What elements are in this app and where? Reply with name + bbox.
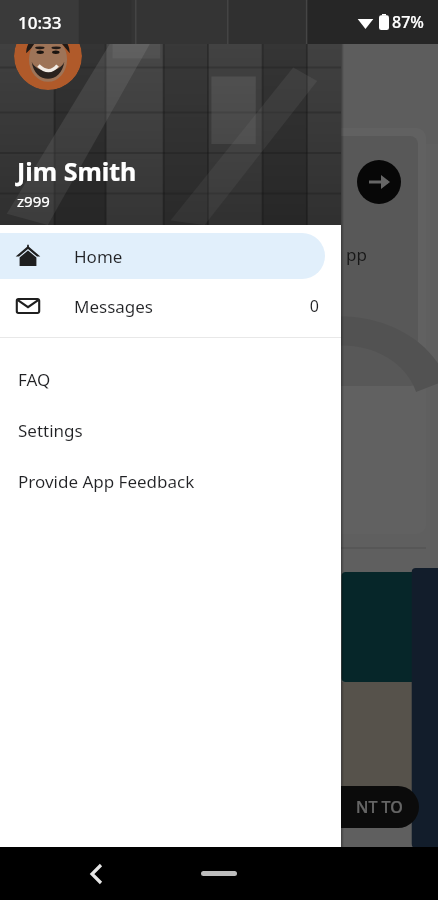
- staticText: FAQ: [18, 368, 51, 391]
- button[interactable]: NT TO: [300, 786, 419, 828]
- staticText: Settings: [18, 419, 83, 442]
- button[interactable]: Back: [72, 850, 120, 898]
- staticText: 10:33: [18, 11, 62, 34]
- staticText: Messages: [74, 295, 154, 318]
- button[interactable]: FAQ: [0, 354, 341, 405]
- staticText: 87%: [392, 11, 424, 33]
- button[interactable]: Profile photo: [14, 22, 82, 90]
- button[interactable]: Settings: [0, 405, 341, 456]
- button[interactable]: Messages: [0, 279, 341, 333]
- button[interactable]: Provide App Feedback: [0, 456, 341, 507]
- staticText: 0: [309, 295, 319, 317]
- staticText: Home: [74, 245, 123, 268]
- button[interactable]: Home: [201, 871, 237, 876]
- staticText: pp: [346, 243, 367, 266]
- button[interactable]: Next: [357, 160, 401, 204]
- button[interactable]: Home: [0, 233, 325, 279]
- staticText: z999: [17, 191, 50, 211]
- staticText: Jim Smith: [17, 154, 137, 188]
- staticText: Provide App Feedback: [18, 470, 195, 493]
- staticText: NT TO: [356, 796, 403, 818]
